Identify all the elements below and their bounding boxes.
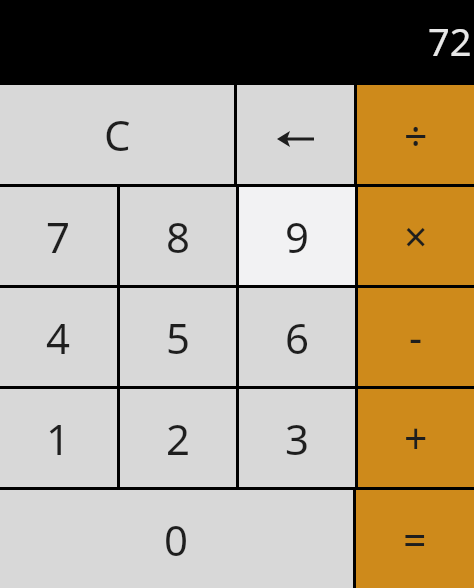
button[interactable]: 3 [239,389,355,487]
button[interactable]: 6 [239,288,355,386]
button[interactable]: 8 [120,187,236,285]
button[interactable]: ÷ [357,85,474,184]
staticText: 5 [166,309,191,366]
staticText: 8 [166,208,191,265]
button[interactable]: 5 [120,288,236,386]
staticText: 0 [164,511,189,568]
staticText: 1 [46,410,71,467]
button[interactable]: C [0,85,234,184]
staticText: 4 [46,309,71,366]
button[interactable]: 9 [239,187,355,285]
button[interactable]: 0 [0,490,353,588]
staticText: + [404,410,428,466]
button[interactable]: 1 [0,389,117,487]
button[interactable]: + [358,389,474,487]
button[interactable]: 2 [120,389,236,487]
button[interactable]: 7 [0,187,117,285]
staticText: 9 [285,208,310,265]
staticText: 2 [166,410,191,467]
staticText: 72 [428,15,472,67]
staticText: = [403,511,427,567]
staticText: C [104,106,131,163]
button[interactable]: 4 [0,288,117,386]
staticText: 6 [285,309,310,366]
button[interactable] [237,85,354,184]
button[interactable]: × [358,187,474,285]
staticText: × [404,208,428,264]
button[interactable]: - [358,288,474,386]
staticText: ÷ [404,107,428,163]
button[interactable]: = [356,490,474,588]
staticText: 3 [285,410,310,467]
staticText: 7 [46,208,71,265]
staticText: - [409,309,423,365]
